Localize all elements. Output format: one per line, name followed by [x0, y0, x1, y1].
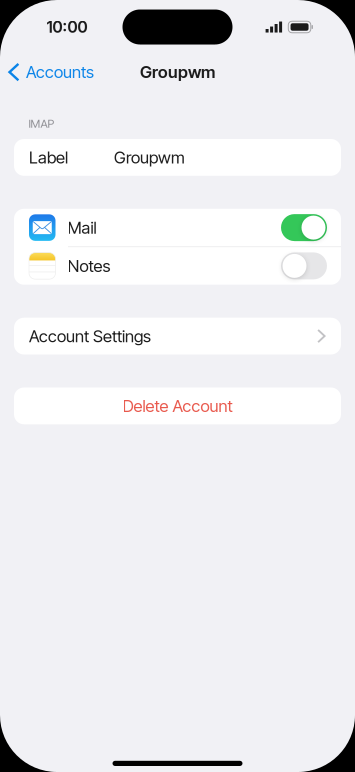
staticText: 10:00 [46, 17, 87, 37]
button[interactable]: Account Settings [14, 318, 341, 354]
staticText: Delete Account [122, 396, 232, 416]
button[interactable]: Mail [14, 209, 341, 246]
staticText: IMAP [28, 117, 54, 130]
staticText: Accounts [26, 62, 94, 82]
button[interactable]: Notes [14, 247, 341, 285]
button[interactable]: Back to Accounts [0, 52, 102, 92]
staticText: Label [29, 147, 68, 167]
button[interactable]: Label [14, 139, 341, 176]
staticText: Account Settings [29, 326, 151, 346]
staticText: Groupwm [140, 62, 215, 82]
staticText: Groupwm [114, 147, 185, 167]
staticText: Notes [67, 256, 110, 276]
button[interactable]: Delete Account [14, 387, 341, 424]
staticText: Mail [67, 217, 96, 238]
